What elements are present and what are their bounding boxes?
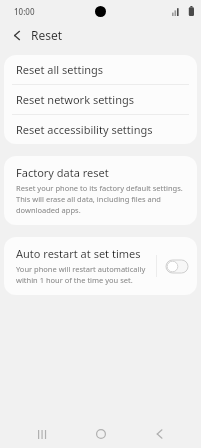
button[interactable]: Back [142, 420, 176, 448]
button[interactable]: Auto restart at set times toggle [157, 250, 197, 283]
button[interactable]: Reset all settings [4, 55, 197, 84]
staticText: Reset your phone to its factory default … [16, 183, 185, 215]
staticText: Reset accessibility settings [16, 122, 153, 137]
staticText: Reset [31, 27, 63, 43]
button[interactable]: Factory data reset [4, 156, 197, 225]
staticText: Your phone will restart automatically wi… [16, 264, 150, 285]
button[interactable]: Back [8, 26, 26, 44]
button[interactable]: Home [84, 420, 118, 448]
button[interactable]: Reset accessibility settings [4, 115, 197, 144]
staticText: Reset network settings [16, 92, 134, 107]
staticText: Factory data reset [16, 165, 109, 180]
staticText: Auto restart at set times [16, 246, 141, 261]
button[interactable]: Recents [25, 420, 59, 448]
button[interactable]: Reset network settings [4, 85, 197, 114]
staticText: Reset all settings [16, 62, 104, 77]
staticText: 10:00 [14, 6, 35, 17]
button[interactable]: Auto restart at set times [4, 237, 156, 295]
